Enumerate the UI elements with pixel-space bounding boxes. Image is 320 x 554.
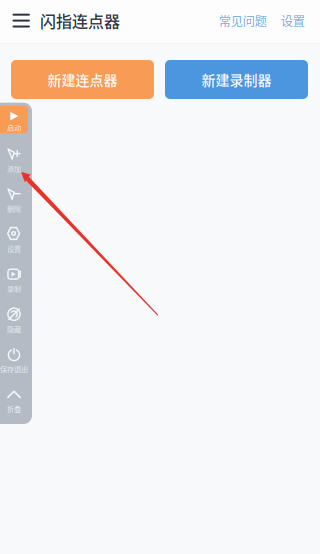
staticText: 删除 xyxy=(7,203,21,214)
button[interactable]: 新建录制器 xyxy=(165,60,308,99)
staticText: 启动 xyxy=(7,122,21,132)
staticText: 常见问题 xyxy=(219,12,267,29)
button[interactable]: 设置 xyxy=(0,215,32,255)
staticText: 隐藏 xyxy=(7,323,21,334)
staticText: 折叠 xyxy=(7,404,21,414)
staticText: 录制 xyxy=(7,283,21,294)
staticText: 设置 xyxy=(7,243,21,254)
button[interactable]: 菜单 xyxy=(0,0,40,41)
button[interactable]: 添加 xyxy=(0,134,32,175)
staticText: 添加 xyxy=(7,163,21,174)
button[interactable]: 常见问题 xyxy=(219,0,267,41)
button[interactable]: 启动 xyxy=(0,106,28,133)
staticText: 闪指连点器 xyxy=(40,9,120,32)
button[interactable]: 保存退出 xyxy=(0,335,32,375)
staticText: 新建连点器 xyxy=(47,69,117,90)
button[interactable]: 新建连点器 xyxy=(11,60,154,99)
button[interactable]: 删除 xyxy=(0,175,32,215)
button[interactable]: 录制 xyxy=(0,255,32,295)
staticText: 保存退出 xyxy=(0,364,28,374)
button[interactable]: 折叠 xyxy=(0,375,32,415)
staticText: 新建录制器 xyxy=(201,69,271,90)
button[interactable]: 隐藏 xyxy=(0,295,32,335)
button[interactable]: 设置 xyxy=(267,0,320,41)
staticText: 设置 xyxy=(281,12,305,29)
